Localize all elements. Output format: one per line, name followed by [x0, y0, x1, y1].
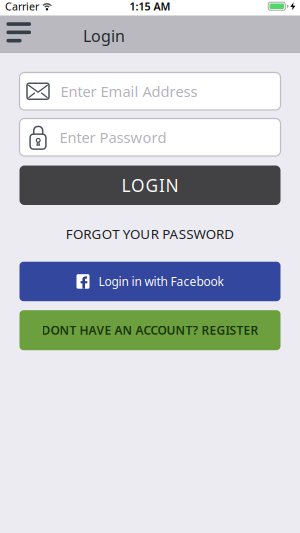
staticText: 1:15 AM — [129, 0, 170, 13]
staticText: LOGIN — [121, 174, 178, 197]
button[interactable]: Menu — [0, 24, 39, 44]
button[interactable]: Enter Email Address — [19, 72, 280, 110]
staticText: DONT HAVE AN ACCOUNT? REGISTER — [41, 322, 258, 338]
staticText: Enter Email Address — [60, 81, 197, 101]
staticText: FORGOT YOUR PASSWORD — [66, 225, 234, 243]
button[interactable]: Enter Password — [19, 118, 280, 156]
staticText: Carrier — [5, 0, 39, 13]
staticText: Login in with Facebook — [98, 273, 223, 289]
staticText: Enter Password — [59, 127, 166, 147]
button[interactable]: DONT HAVE AN ACCOUNT? REGISTER — [19, 310, 280, 350]
button[interactable]: Login in with Facebook — [19, 262, 280, 301]
button[interactable]: FORGOT YOUR PASSWORD — [66, 225, 234, 243]
staticText: Login — [83, 25, 125, 46]
button[interactable]: LOGIN — [19, 165, 280, 205]
